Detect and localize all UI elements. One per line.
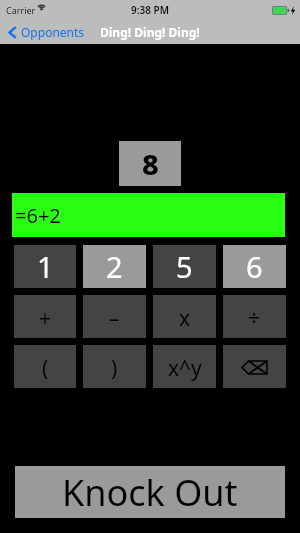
button[interactable]: + [14,295,76,338]
staticText: 5 [176,247,193,286]
staticText: ) [111,354,118,383]
button[interactable]: Knock Out [15,466,285,518]
button[interactable]: ÷ [223,295,286,338]
other: Backspace [242,360,267,373]
staticText: 6 [246,247,263,286]
staticText: 9:38 PM [131,3,169,17]
staticText: ÷ [248,304,261,333]
staticText: Carrier [6,4,36,16]
button[interactable]: 2 [83,245,146,288]
staticText: 2 [106,247,123,286]
staticText: ( [42,354,49,383]
button[interactable]: x [153,295,216,338]
button[interactable]: ) [83,345,146,388]
button[interactable]: – [83,295,146,338]
staticText: x^y [168,354,202,383]
staticText: Opponents [21,24,85,40]
button[interactable]: Backspace [223,345,286,388]
staticText: 1 [37,247,54,286]
button[interactable]: 5 [153,245,216,288]
staticText: =6+2 [15,202,61,229]
button[interactable]: x^y [153,345,216,388]
staticText: – [109,304,120,333]
button[interactable]: =6+2 [12,193,285,237]
staticText: 8 [142,144,159,183]
staticText: + [39,304,52,333]
staticText: x [179,304,191,333]
staticText: Knock Out [62,468,238,517]
button[interactable]: 6 [223,245,286,288]
button[interactable]: ( [14,345,76,388]
staticText: Ding! Ding! Ding! [100,24,200,40]
button[interactable]: 1 [14,245,76,288]
button[interactable]: Back to Opponents [0,20,93,44]
